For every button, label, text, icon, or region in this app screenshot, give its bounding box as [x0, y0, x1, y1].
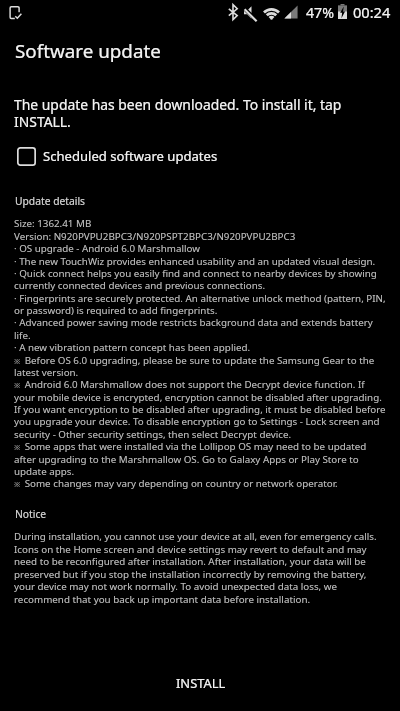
other: Software update available — [8, 5, 24, 21]
staticText: · The new TouchWiz provides enhanced usa… — [14, 256, 376, 267]
staticText: recommend that you back up important dat… — [14, 594, 311, 605]
staticText: life. — [14, 330, 31, 341]
staticText: If you want encryption to be disabled af… — [14, 404, 386, 415]
staticText: · OS upgrade - Android 6.0 Marshmallow — [14, 243, 200, 254]
staticText: after upgrading to the Marshmallow OS. G… — [14, 454, 359, 465]
staticText: · Fingerprints are securely protected. A… — [14, 293, 386, 304]
staticText: you upgrade your device. To disable encr… — [14, 416, 380, 427]
staticText: latest version. — [14, 367, 79, 378]
button[interactable]: INSTALL — [0, 659, 400, 711]
staticText: your mobile device is encrypted, encrypt… — [14, 392, 382, 403]
staticText: · Advanced power saving mode restricts b… — [14, 317, 373, 328]
staticText: INSTALL — [176, 675, 226, 691]
staticText: ※ Before OS 6.0 upgrading, please be sur… — [14, 355, 375, 366]
staticText: your device may not work normally. To av… — [14, 581, 338, 592]
staticText: preserved but if you stop the installati… — [14, 569, 367, 580]
staticText: Size: 1362.41 MB — [14, 218, 92, 229]
staticText: Notice — [15, 509, 47, 521]
staticText: ※ Android 6.0 Marshmallow does not suppo… — [14, 379, 365, 390]
staticText: or password) is required to add fingerpr… — [14, 305, 218, 316]
staticText: · A new vibration pattern concept has be… — [14, 342, 251, 353]
staticText: ※ Some apps that were installed via the … — [14, 441, 367, 452]
staticText: During installation, you cannot use your… — [14, 531, 377, 542]
staticText: 47% — [306, 4, 335, 22]
staticText: security - Other security settings, then… — [14, 429, 292, 440]
staticText: Version: N920PVPU2BPC3/N920PSPT2BPC3/N92… — [14, 231, 296, 242]
staticText: Scheduled software updates — [43, 148, 218, 164]
staticText: Update details — [15, 196, 86, 208]
staticText: INSTALL. — [14, 114, 71, 131]
staticText: Software update — [15, 40, 161, 63]
button[interactable]: Scheduled software updates — [17, 142, 386, 170]
staticText: currently connected devices and previous… — [14, 280, 266, 291]
staticText: Icons on the Home screen and device sett… — [14, 544, 367, 555]
staticText: need to be reconfigured after installati… — [14, 556, 366, 567]
staticText: · Quick connect helps you easily find an… — [14, 268, 377, 279]
staticText: update apps. — [14, 466, 75, 477]
staticText: 00:24 — [353, 4, 391, 22]
staticText: ※ Some changes may vary depending on cou… — [14, 478, 338, 489]
staticText: The update has been downloaded. To insta… — [14, 97, 342, 114]
